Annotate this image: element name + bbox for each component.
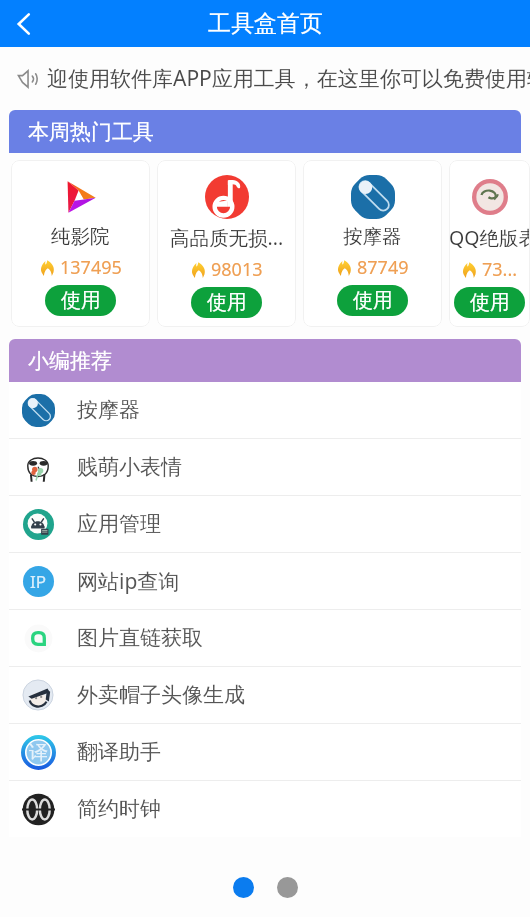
button[interactable]: QQ绝版表情... — [449, 160, 530, 327]
button[interactable]: 应用管理 — [9, 496, 521, 552]
staticText: 使用 — [470, 290, 510, 315]
button[interactable]: 使用 — [191, 287, 262, 318]
button[interactable]: 使用 — [454, 287, 525, 318]
button[interactable]: Back — [0, 0, 48, 47]
button[interactable]: 本周热门工具 — [9, 110, 521, 153]
staticText: 贱萌小表情 — [77, 454, 182, 480]
staticText: IP — [30, 570, 47, 593]
staticText: QQ绝版表情... — [449, 224, 530, 251]
staticText: 简约时钟 — [77, 796, 161, 822]
staticText: 87749 — [357, 255, 409, 280]
button[interactable]: 按摩器 — [9, 382, 521, 438]
button[interactable]: 贱萌小表情 — [9, 439, 521, 495]
staticText: 按摩器 — [343, 224, 402, 249]
button[interactable]: 简约时钟 — [9, 781, 521, 837]
button[interactable]: 高品质无损... — [157, 160, 296, 327]
button[interactable]: 图片直链获取 — [9, 610, 521, 666]
staticText: 迎使用软件库APP应用工具，在这里你可以免费使用软件库 — [47, 64, 530, 93]
button[interactable]: 外卖帽子头像生成 — [9, 667, 521, 723]
staticText: 使用 — [61, 288, 101, 313]
staticText: 高品质无损... — [170, 224, 284, 251]
staticText: 译 — [29, 741, 48, 765]
button[interactable]: 使用 — [337, 285, 408, 316]
button[interactable]: 纯影院 — [11, 160, 150, 327]
staticText: 98013 — [211, 257, 263, 282]
staticText: 137495 — [60, 255, 122, 280]
staticText: 本周热门工具 — [28, 119, 154, 145]
staticText: 小编推荐 — [28, 348, 112, 374]
button[interactable]: Page 2 — [277, 877, 298, 898]
button[interactable]: 小编推荐 — [9, 339, 521, 382]
button[interactable]: Page 1 — [233, 877, 254, 898]
staticText: 纯影院 — [51, 224, 110, 249]
staticText: 使用 — [353, 288, 393, 313]
staticText: 工具盒首页 — [208, 9, 323, 38]
staticText: 应用管理 — [77, 511, 161, 537]
staticText: 网站ip查询 — [77, 567, 180, 596]
staticText: 外卖帽子头像生成 — [77, 682, 245, 708]
button[interactable]: 按摩器 — [303, 160, 442, 327]
staticText: 翻译助手 — [77, 739, 161, 765]
staticText: 使用 — [207, 290, 247, 315]
button[interactable]: 使用 — [45, 285, 116, 316]
staticText: 按摩器 — [77, 397, 140, 423]
staticText: 图片直链获取 — [77, 625, 203, 651]
staticText: 73... — [482, 257, 518, 282]
button[interactable]: 译 — [9, 724, 521, 780]
button[interactable]: IP — [9, 553, 521, 609]
